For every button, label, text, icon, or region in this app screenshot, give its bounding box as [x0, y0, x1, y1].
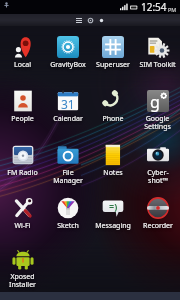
staticText: Wi-Fi	[14, 221, 31, 231]
staticText: Recorder	[143, 221, 173, 231]
staticText: File Manager	[53, 168, 83, 185]
button[interactable]: Cyber- shot™	[135, 144, 180, 192]
staticText: Superuser	[96, 60, 130, 70]
button[interactable]: Wi-Fi	[0, 197, 45, 245]
staticText: People	[11, 114, 34, 124]
button[interactable]: Local	[0, 36, 45, 84]
staticText: Notes	[103, 168, 123, 178]
staticText: GravityBox	[50, 60, 86, 70]
staticText: 31	[61, 96, 75, 112]
staticText: Cyber- shot™	[147, 168, 169, 185]
button[interactable]: Sketch	[45, 197, 90, 245]
button[interactable]: Notes	[90, 144, 135, 192]
button[interactable]: Back	[96, 15, 107, 26]
staticText: Phone	[102, 114, 124, 124]
button[interactable]: File Manager	[45, 144, 90, 192]
button[interactable]: Menu	[73, 14, 85, 26]
button[interactable]: GravityBox	[45, 36, 90, 84]
staticText: PM	[168, 6, 177, 13]
staticText: g	[150, 91, 160, 113]
button[interactable]: Recorder	[135, 197, 180, 245]
staticText: Xposed Installer	[9, 272, 36, 289]
staticText: 12:54	[141, 0, 167, 14]
staticText: Sketch	[57, 221, 79, 231]
button[interactable]: Superuser	[90, 36, 135, 84]
button[interactable]: Xposed Installer	[0, 248, 45, 296]
button[interactable]: Phone	[90, 90, 135, 138]
button[interactable]: Home	[85, 15, 96, 26]
staticText: Calendar	[53, 114, 83, 124]
staticText: Messaging	[95, 221, 131, 231]
staticText: Google Settings	[144, 114, 171, 131]
button[interactable]: =)	[90, 197, 135, 245]
staticText: Local	[14, 60, 31, 70]
staticText: SIM Toolkit	[139, 60, 176, 70]
staticText: FM Radio	[7, 168, 38, 178]
staticText: =)	[109, 200, 118, 212]
button[interactable]: SIM Toolkit	[135, 36, 180, 84]
button[interactable]: g	[135, 90, 180, 138]
button[interactable]: People	[0, 90, 45, 138]
button[interactable]: 31	[45, 90, 90, 138]
button[interactable]: FM Radio	[0, 144, 45, 192]
